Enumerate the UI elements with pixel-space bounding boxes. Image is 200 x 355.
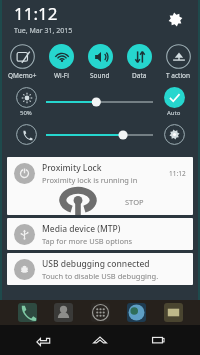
button[interactable]: Sound xyxy=(81,44,119,80)
staticText: STOP xyxy=(125,197,144,207)
staticText: Sound xyxy=(90,71,110,80)
staticText: Tue, Mar 31, 2015 xyxy=(14,26,73,36)
button[interactable]: 50% xyxy=(11,87,41,117)
button[interactable]: App xyxy=(127,303,146,322)
staticText: Auto xyxy=(167,109,181,117)
staticText: Proximity Lock xyxy=(42,162,102,174)
button[interactable]: T action xyxy=(159,44,197,80)
staticText: 11:12 xyxy=(169,169,186,178)
button[interactable]: Data xyxy=(120,44,158,80)
button[interactable]: Proximity Lock xyxy=(7,157,193,215)
staticText: Proximity lock is running in foreground xyxy=(42,175,169,185)
button[interactable]: STOP xyxy=(7,189,193,215)
button[interactable]: Back xyxy=(28,325,58,355)
button[interactable]: Media device (MTP) xyxy=(7,218,193,250)
staticText: QMemo+ xyxy=(8,71,37,80)
button[interactable]: App xyxy=(54,303,73,322)
staticText: Touch to disable USB debugging. xyxy=(42,271,159,281)
button[interactable]: Recents xyxy=(143,325,173,355)
button[interactable]: Settings xyxy=(162,6,188,32)
button[interactable] xyxy=(46,91,153,113)
button[interactable]: Sound settings xyxy=(159,124,189,145)
staticText: T action xyxy=(166,71,191,80)
button[interactable]: App xyxy=(18,303,37,322)
button[interactable]: App xyxy=(164,303,183,322)
staticText: Data xyxy=(132,71,147,80)
button[interactable]: Wi-Fi xyxy=(42,44,80,80)
staticText: Wi-Fi xyxy=(54,71,69,80)
staticText: 50% xyxy=(20,109,32,117)
staticText: USB debugging connected xyxy=(42,258,150,270)
button[interactable]: Home xyxy=(85,325,115,355)
button[interactable]: App xyxy=(91,303,110,322)
button[interactable]: QMemo+ xyxy=(3,44,41,80)
button[interactable]: USB debugging connected xyxy=(7,253,193,285)
staticText: Tap for more USB options xyxy=(42,236,133,246)
button[interactable]: Auto xyxy=(159,87,189,117)
button[interactable] xyxy=(46,124,153,146)
staticText: 11:12 xyxy=(14,2,58,25)
staticText: Media device (MTP) xyxy=(42,223,121,235)
button[interactable]: Volume xyxy=(11,124,41,145)
